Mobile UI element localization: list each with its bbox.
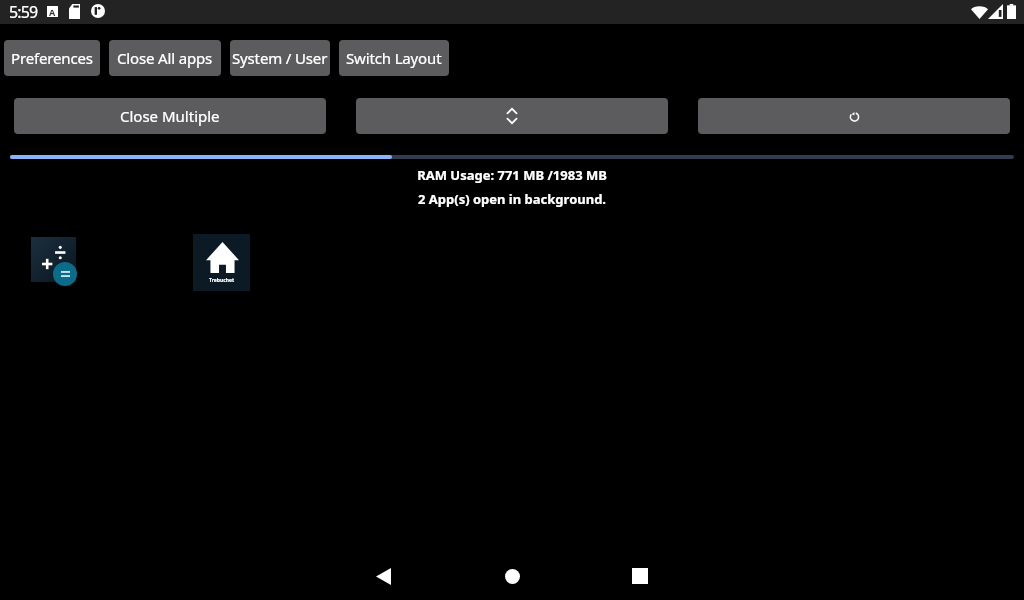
staticText: 2 App(s) open in background. [0,190,1024,208]
button[interactable]: Sort order [356,98,668,134]
staticText: Close All apps [117,48,213,68]
staticText: Trebuchet [209,277,235,284]
button[interactable]: Close Multiple [14,98,326,134]
staticText: Preferences [11,48,93,68]
staticText: Close Multiple [120,106,220,126]
staticText: RAM Usage: 771 MB /1983 MB [0,166,1024,184]
button[interactable]: Back [347,552,419,600]
button[interactable]: Recents [604,552,676,600]
button[interactable]: Calculator [31,237,79,285]
button[interactable]: Trebuchet launcher [193,234,250,291]
button[interactable]: Close All apps [109,40,221,76]
staticText: A [49,6,56,17]
button[interactable]: Refresh [698,98,1010,134]
button[interactable]: System / User [230,40,330,76]
button[interactable]: Home [476,552,548,600]
staticText: Switch Layout [346,48,442,68]
button[interactable]: Preferences [4,40,100,76]
button[interactable]: Switch Layout [339,40,449,76]
staticText: System / User [232,48,328,68]
staticText: 5:59 [9,1,38,23]
